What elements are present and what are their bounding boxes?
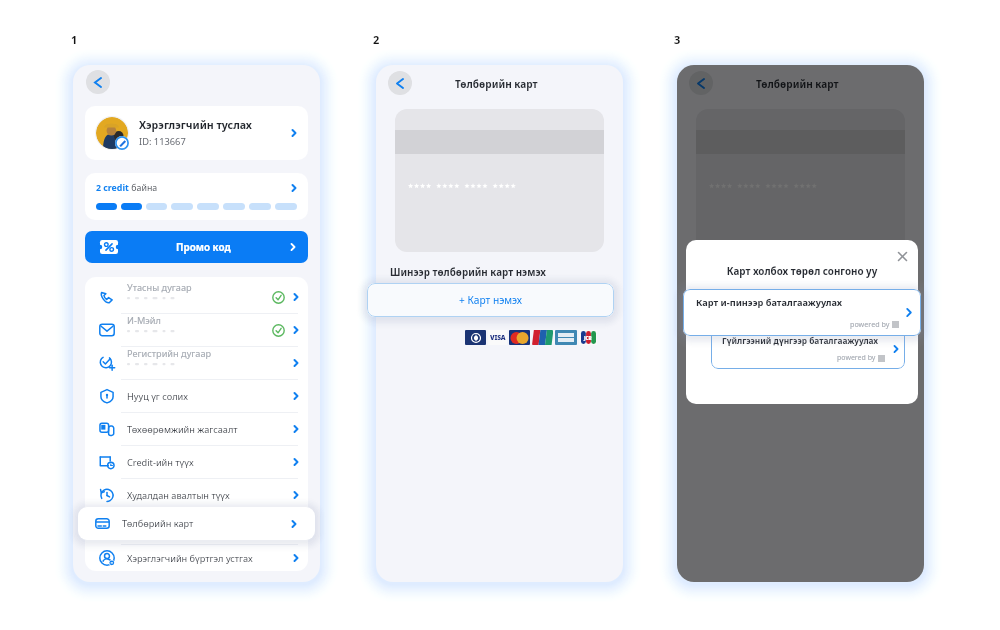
button[interactable]: Промо код	[85, 231, 308, 263]
staticText: Худалдан авалтын түүх	[127, 489, 230, 502]
staticText: Хэрэглэгчийн туслах	[139, 118, 252, 132]
staticText: Карт и-пинээр баталгаажуулах	[696, 296, 843, 309]
staticText: Утасны дугаар	[127, 281, 192, 294]
staticText: VISA	[791, 333, 807, 342]
button[interactable]: Карт и-пинээр баталгаажуулах	[683, 289, 921, 336]
staticText: VISA	[490, 333, 506, 342]
staticText: байна	[129, 182, 158, 194]
staticText: Төлбөрийн карт	[455, 77, 538, 91]
button[interactable]: Гүйлгээний дүнгээр баталгаажуулах	[711, 328, 905, 369]
staticText: Хэрэглэгчийн бүртгэл устгах	[127, 552, 253, 565]
staticText: Шинээр төлбөрийн карт нэмэх	[691, 266, 847, 279]
staticText: JCB	[584, 335, 592, 341]
button[interactable]: Регистрийн дугаар	[85, 347, 308, 379]
staticText: 3	[674, 32, 681, 47]
button[interactable]: Хэрэглэгчийн бүртгэл устгах	[85, 545, 308, 571]
button[interactable]: Төлбөрийн карт	[78, 507, 315, 540]
staticText: Регистрийн дугаар	[127, 347, 212, 360]
button[interactable]: Нууц үг солих	[85, 380, 308, 412]
staticText: Промо код	[176, 241, 231, 254]
button[interactable]: Back	[689, 71, 713, 95]
staticText: Credit-ийн түүх	[127, 456, 194, 469]
staticText: Төлбөрийн карт	[756, 77, 839, 91]
button[interactable]: 2 credit	[85, 173, 308, 220]
button[interactable]: Хэрэглэгчийн туслах	[85, 106, 308, 160]
button[interactable]: Back	[388, 71, 412, 95]
staticText: Карт холбох төрөл сонгоно уу	[686, 265, 918, 278]
button[interactable]: Утасны дугаар	[85, 281, 308, 313]
staticText: powered by	[837, 353, 878, 363]
button[interactable]: + Карт нэмэх	[367, 283, 614, 317]
staticText: 2	[373, 32, 380, 47]
staticText: Төхөөрөмжийн жагсаалт	[127, 423, 238, 436]
staticText: Нууц үг солих	[127, 390, 188, 403]
staticText: 2 credit	[96, 182, 129, 194]
button[interactable]: И-Мэйл	[85, 314, 308, 346]
staticText: ID: 113667	[139, 135, 186, 148]
staticText: Төлбөрийн карт	[122, 517, 194, 530]
staticText: Шинээр төлбөрийн карт нэмэх	[390, 266, 546, 279]
button[interactable]: Худалдан авалтын түүх	[85, 479, 308, 511]
button[interactable]: Credit-ийн түүх	[85, 446, 308, 478]
button[interactable]: Back	[86, 70, 110, 94]
staticText: И-Мэйл	[127, 314, 161, 327]
button[interactable]: Төхөөрөмжийн жагсаалт	[85, 413, 308, 445]
staticText: Гүйлгээний дүнгээр баталгаажуулах	[722, 335, 879, 346]
staticText: JCB	[885, 335, 893, 341]
staticText: 1	[71, 32, 78, 47]
staticText: + Карт нэмэх	[459, 293, 523, 307]
staticText: powered by	[850, 319, 892, 329]
button[interactable]: Close	[895, 249, 909, 263]
